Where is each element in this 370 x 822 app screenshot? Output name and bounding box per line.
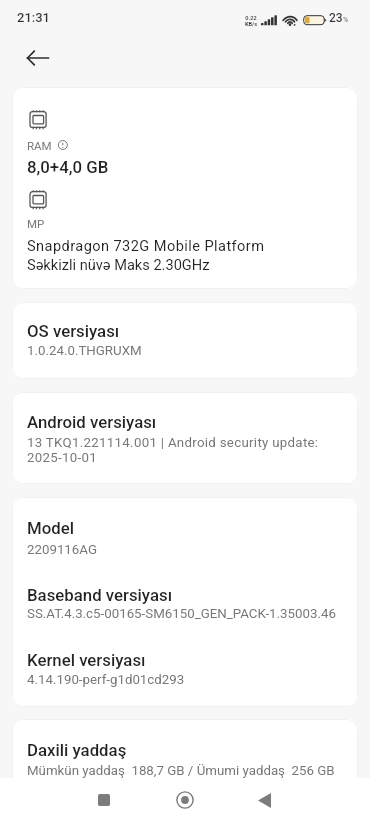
button[interactable]: Back [242,778,286,822]
staticText: Baseband versiyası [27,585,173,605]
staticText: 2209116AG [27,542,97,558]
staticText: Mümkün yaddaş 188,7 GB / Ümumi yaddaş 25… [27,763,335,779]
staticText: KB/s [244,21,258,28]
button[interactable] [12,719,358,799]
button[interactable] [12,504,358,564]
staticText: 0.22 [244,15,258,22]
staticText: 13 TKQ1.221114.001 | Android security up… [27,435,319,465]
button[interactable] [12,302,358,379]
staticText: 23 [329,11,343,25]
button[interactable]: Home [163,778,207,822]
staticText: 1.0.24.0.THGRUXM [27,343,142,359]
staticText: MP [27,217,45,230]
staticText: RAM [27,139,52,152]
button[interactable] [12,636,358,702]
button[interactable] [12,570,358,636]
staticText: Android versiyası [27,412,157,432]
staticText: Model [27,518,74,538]
staticText: Snapdragon 732G Mobile Platform [27,237,265,254]
staticText: 21:31 [17,10,50,25]
button[interactable] [12,87,358,289]
staticText: OS versiyası [27,321,120,341]
staticText: % [343,16,349,24]
button[interactable]: Back [18,38,58,78]
button[interactable]: Recent apps [82,778,126,822]
staticText: Daxili yaddaş [27,740,127,760]
staticText: SS.AT.4.3.c5-00165-SM6150_GEN_PACK-1.350… [27,606,336,622]
button[interactable] [12,392,358,484]
staticText: 8,0+4,0 GB [27,157,109,177]
staticText: Səkkizli nüvə Maks 2.30GHz [27,256,210,273]
staticText: Kernel versiyası [27,650,146,670]
staticText: 4.14.190-perf-g1d01cd293 [27,672,185,688]
